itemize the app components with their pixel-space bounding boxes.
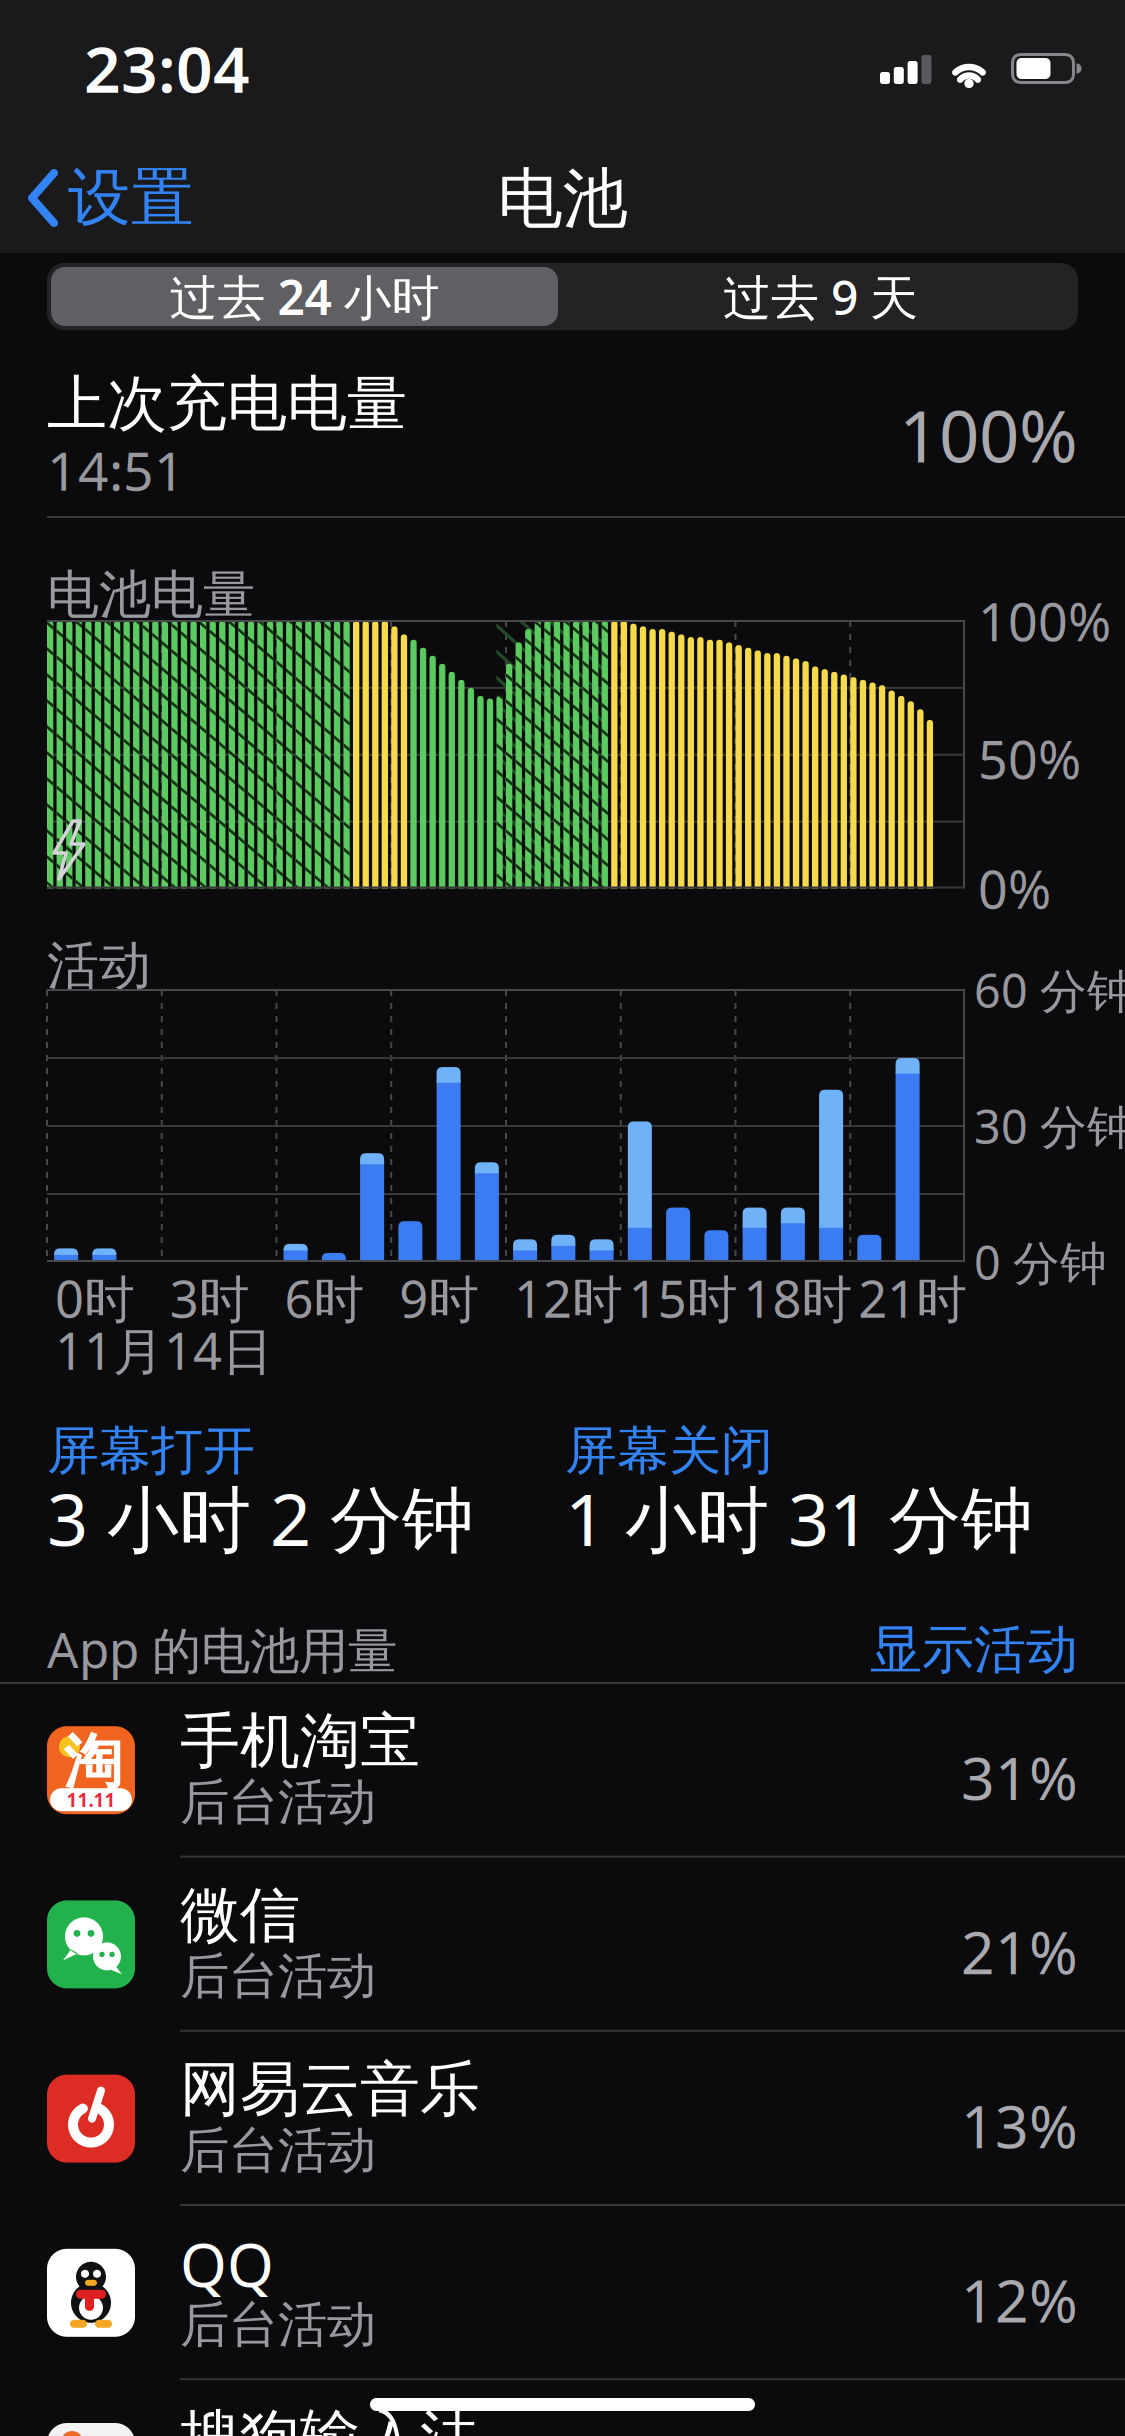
staticText: 微信 [180, 1879, 300, 1952]
staticText: 23:04 [84, 25, 250, 110]
button[interactable]: 微信 [0, 1857, 1125, 2031]
staticText: 100% [978, 586, 1111, 656]
staticText: 3 小时 2 分钟 [47, 1470, 474, 1566]
staticText: 1 小时 31 分钟 [565, 1470, 1033, 1566]
staticText: 9时 [399, 1264, 479, 1332]
button[interactable]: 淘 [0, 1683, 1125, 1857]
button[interactable]: 网易云音乐 [0, 2032, 1125, 2206]
staticText: 11.11 [66, 1787, 115, 1812]
staticText: 6时 [284, 1264, 364, 1332]
staticText: 后台活动 [180, 2120, 376, 2181]
staticText: 14:51 [47, 435, 185, 505]
staticText: 屏幕打开 [47, 1419, 255, 1483]
button[interactable]: 过去 24 小时 [51, 267, 558, 326]
staticText: 100% [899, 388, 1078, 482]
staticText: 50% [978, 724, 1081, 793]
button[interactable]: 显示活动 [778, 1610, 1078, 1690]
staticText: 后台活动 [180, 1772, 376, 1832]
staticText: 60 分钟 [974, 959, 1125, 1021]
staticText: 3时 [170, 1264, 250, 1332]
staticText: 网易云音乐 [180, 2053, 480, 2126]
staticText: 电池电量 [47, 563, 255, 627]
staticText: 31% [961, 1738, 1078, 1816]
staticText: 显示活动 [870, 1618, 1078, 1682]
staticText: 12% [961, 2261, 1078, 2339]
staticText: 21时 [858, 1264, 967, 1332]
staticText: 后台活动 [180, 2294, 376, 2355]
staticText: 0% [978, 854, 1051, 923]
staticText: 30 分钟 [974, 1095, 1125, 1157]
staticText: 搜狗输入法 [180, 2401, 480, 2436]
staticText: 手机淘宝 [180, 1704, 420, 1778]
staticText: App 的电池用量 [47, 1616, 397, 1682]
staticText: 上次充电电量 [47, 367, 407, 441]
staticText: 电池 [497, 159, 627, 239]
button[interactable]: 过去 9 天 [567, 267, 1074, 326]
staticText: 活动 [47, 934, 151, 998]
staticText: 12时 [514, 1264, 623, 1332]
staticText: 屏幕关闭 [565, 1419, 773, 1483]
staticText: 11月14日 [55, 1316, 273, 1384]
staticText: 21% [961, 1912, 1078, 1990]
staticText: 0 分钟 [974, 1231, 1107, 1293]
staticText: QQ [180, 2224, 274, 2304]
staticText: 淘 [63, 1726, 122, 1798]
staticText: 13% [961, 2087, 1078, 2164]
staticText: 18时 [743, 1264, 852, 1332]
staticText: 后台活动 [180, 1946, 376, 2007]
staticText: 0时 [55, 1264, 135, 1332]
button[interactable]: QQ [0, 2206, 1125, 2380]
staticText: 设置 [68, 159, 194, 236]
staticText: 过去 9 天 [723, 265, 918, 328]
button[interactable]: 返回设置 [28, 163, 194, 233]
button[interactable]: 搜狗输入法 [0, 2380, 1125, 2436]
staticText: 15时 [629, 1264, 738, 1332]
staticText: 过去 24 小时 [169, 265, 439, 328]
